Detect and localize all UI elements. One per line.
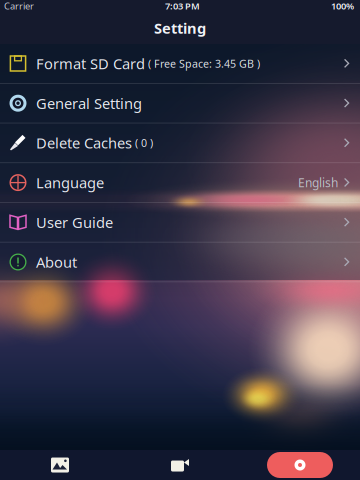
staticText: English	[298, 175, 338, 190]
button[interactable]: General Setting	[0, 84, 360, 123]
staticText: Delete Caches	[36, 133, 132, 153]
button[interactable]: Photos	[0, 450, 120, 480]
staticText: Format SD Card	[36, 54, 145, 73]
button[interactable]: User Guide	[0, 203, 360, 242]
button[interactable]: Delete Caches	[0, 123, 360, 162]
button[interactable]: Settings	[240, 450, 360, 480]
button[interactable]: About	[0, 242, 360, 281]
button[interactable]: Format SD Card	[0, 44, 360, 83]
staticText: ( Free Space: 3.45 GB )	[145, 56, 260, 71]
staticText: ( 0 )	[132, 136, 153, 150]
button[interactable]: Language	[0, 163, 360, 202]
staticText: Language	[36, 173, 104, 192]
staticText: Setting	[154, 18, 206, 38]
staticText: General Setting	[36, 93, 142, 113]
staticText: 7:03 PM	[165, 0, 200, 12]
staticText: About	[36, 252, 77, 272]
staticText: User Guide	[36, 213, 113, 232]
button[interactable]: Videos	[120, 450, 240, 480]
staticText: 100%	[331, 0, 354, 12]
staticText: Carrier	[4, 0, 34, 12]
